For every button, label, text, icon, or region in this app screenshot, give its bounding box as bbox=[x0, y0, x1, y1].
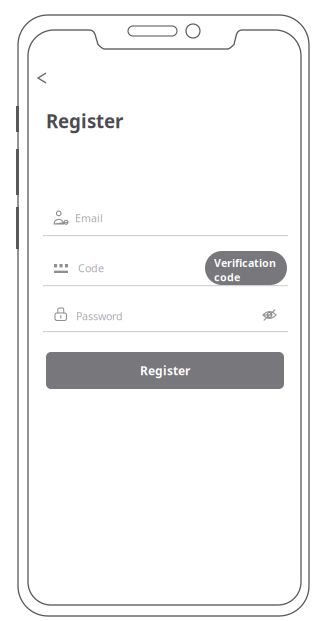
staticText: Code bbox=[78, 261, 104, 275]
button[interactable]: Register bbox=[46, 352, 284, 389]
button[interactable]: Verification code bbox=[205, 251, 287, 285]
button[interactable]: Show password bbox=[258, 306, 281, 324]
button[interactable]: Code bbox=[43, 256, 193, 285]
button[interactable]: Password bbox=[43, 303, 243, 331]
button[interactable]: Back bbox=[31, 66, 53, 90]
staticText: Email bbox=[75, 211, 103, 225]
staticText: Password bbox=[76, 309, 123, 323]
staticText: Register bbox=[140, 362, 190, 378]
staticText: Register bbox=[46, 109, 123, 133]
staticText: Verification code bbox=[214, 256, 276, 284]
button[interactable]: Email bbox=[43, 206, 288, 235]
